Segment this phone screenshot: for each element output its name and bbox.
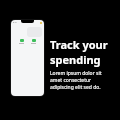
staticText: 9:41 xyxy=(13,21,17,24)
staticText: Lorem ipsum dolor sit amet consectetur a… xyxy=(50,70,112,91)
staticText: spending xyxy=(50,52,101,67)
staticText: Track your xyxy=(50,37,108,52)
